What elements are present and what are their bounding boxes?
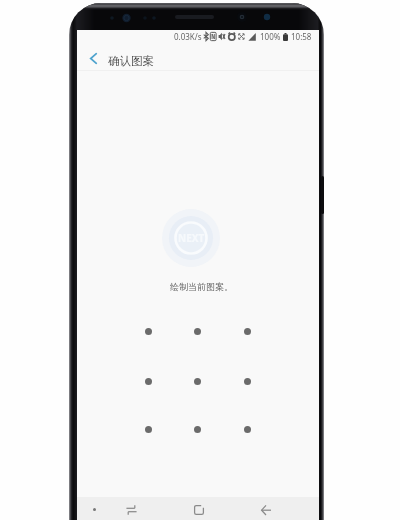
staticText: 绘制当前图案。 [170, 281, 233, 292]
staticText: NEXT [178, 231, 205, 245]
button[interactable]: Recents [119, 498, 143, 520]
button[interactable]: Pattern dot [234, 368, 260, 394]
button[interactable]: Pattern dot [184, 416, 210, 442]
button[interactable]: Pattern dot [135, 318, 161, 344]
staticText: 100% [260, 31, 281, 42]
button[interactable]: Pattern dot [184, 368, 210, 394]
button[interactable]: Back [254, 498, 278, 520]
button[interactable]: Pattern dot [234, 318, 260, 344]
button[interactable]: Pattern dot [184, 318, 210, 344]
button[interactable]: Back [81, 46, 105, 70]
staticText: 确认图案 [108, 54, 154, 68]
button[interactable]: Pattern dot [135, 416, 161, 442]
button[interactable]: Pattern dot [135, 368, 161, 394]
button[interactable]: Pattern dot [234, 416, 260, 442]
staticText: 10:58 [291, 31, 312, 42]
button[interactable]: Home [187, 498, 211, 520]
staticText: 0.03K/s [174, 31, 202, 42]
